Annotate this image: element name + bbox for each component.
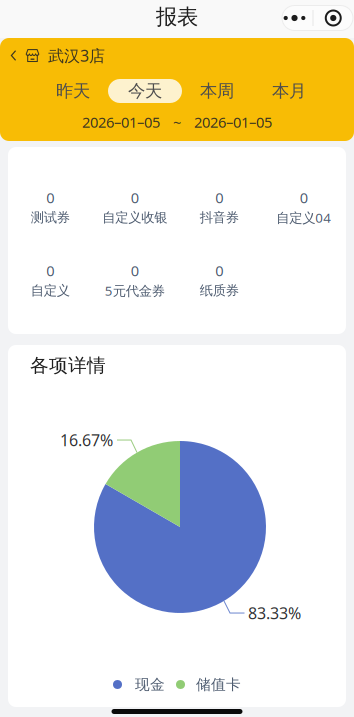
button[interactable]: 昨天 xyxy=(37,73,109,109)
staticText: 抖音券 xyxy=(200,209,239,226)
staticText: 16.67% xyxy=(60,429,113,451)
staticText: 0 xyxy=(46,188,54,207)
staticText: 0 xyxy=(215,188,223,207)
button[interactable]: 本月 xyxy=(253,73,325,109)
button[interactable]: 本周 xyxy=(181,73,253,109)
staticText: 0 xyxy=(131,188,139,207)
staticText: 储值卡 xyxy=(196,675,241,693)
staticText: 自定义04 xyxy=(276,209,331,226)
staticText: 0 xyxy=(300,188,308,207)
staticText: 今天 xyxy=(128,80,162,102)
button[interactable]: More xyxy=(282,5,312,30)
staticText: 2026–01–05 xyxy=(194,112,272,132)
staticText: 2026–01–05 xyxy=(82,112,160,132)
staticText: 0 xyxy=(46,261,54,280)
staticText: 自定义收银 xyxy=(102,209,167,226)
staticText: 本周 xyxy=(200,80,234,102)
button[interactable]: 今天 xyxy=(109,73,181,109)
staticText: 现金 xyxy=(135,675,165,693)
staticText: 0 xyxy=(215,261,223,280)
staticText: 83.33% xyxy=(248,602,301,624)
staticText: 纸质券 xyxy=(200,282,239,299)
staticText: 本月 xyxy=(272,80,306,102)
staticText: 0 xyxy=(131,261,139,280)
staticText: 武汉3店 xyxy=(48,45,105,66)
staticText: 5元代金券 xyxy=(105,282,165,299)
staticText: 测试券 xyxy=(31,209,70,226)
button[interactable]: Close xyxy=(313,5,353,30)
staticText: 各项详情 xyxy=(30,354,106,377)
staticText: 昨天 xyxy=(56,80,90,102)
staticText: 自定义 xyxy=(31,282,70,299)
staticText: 报表 xyxy=(156,4,198,30)
staticText: ~ xyxy=(173,112,181,132)
